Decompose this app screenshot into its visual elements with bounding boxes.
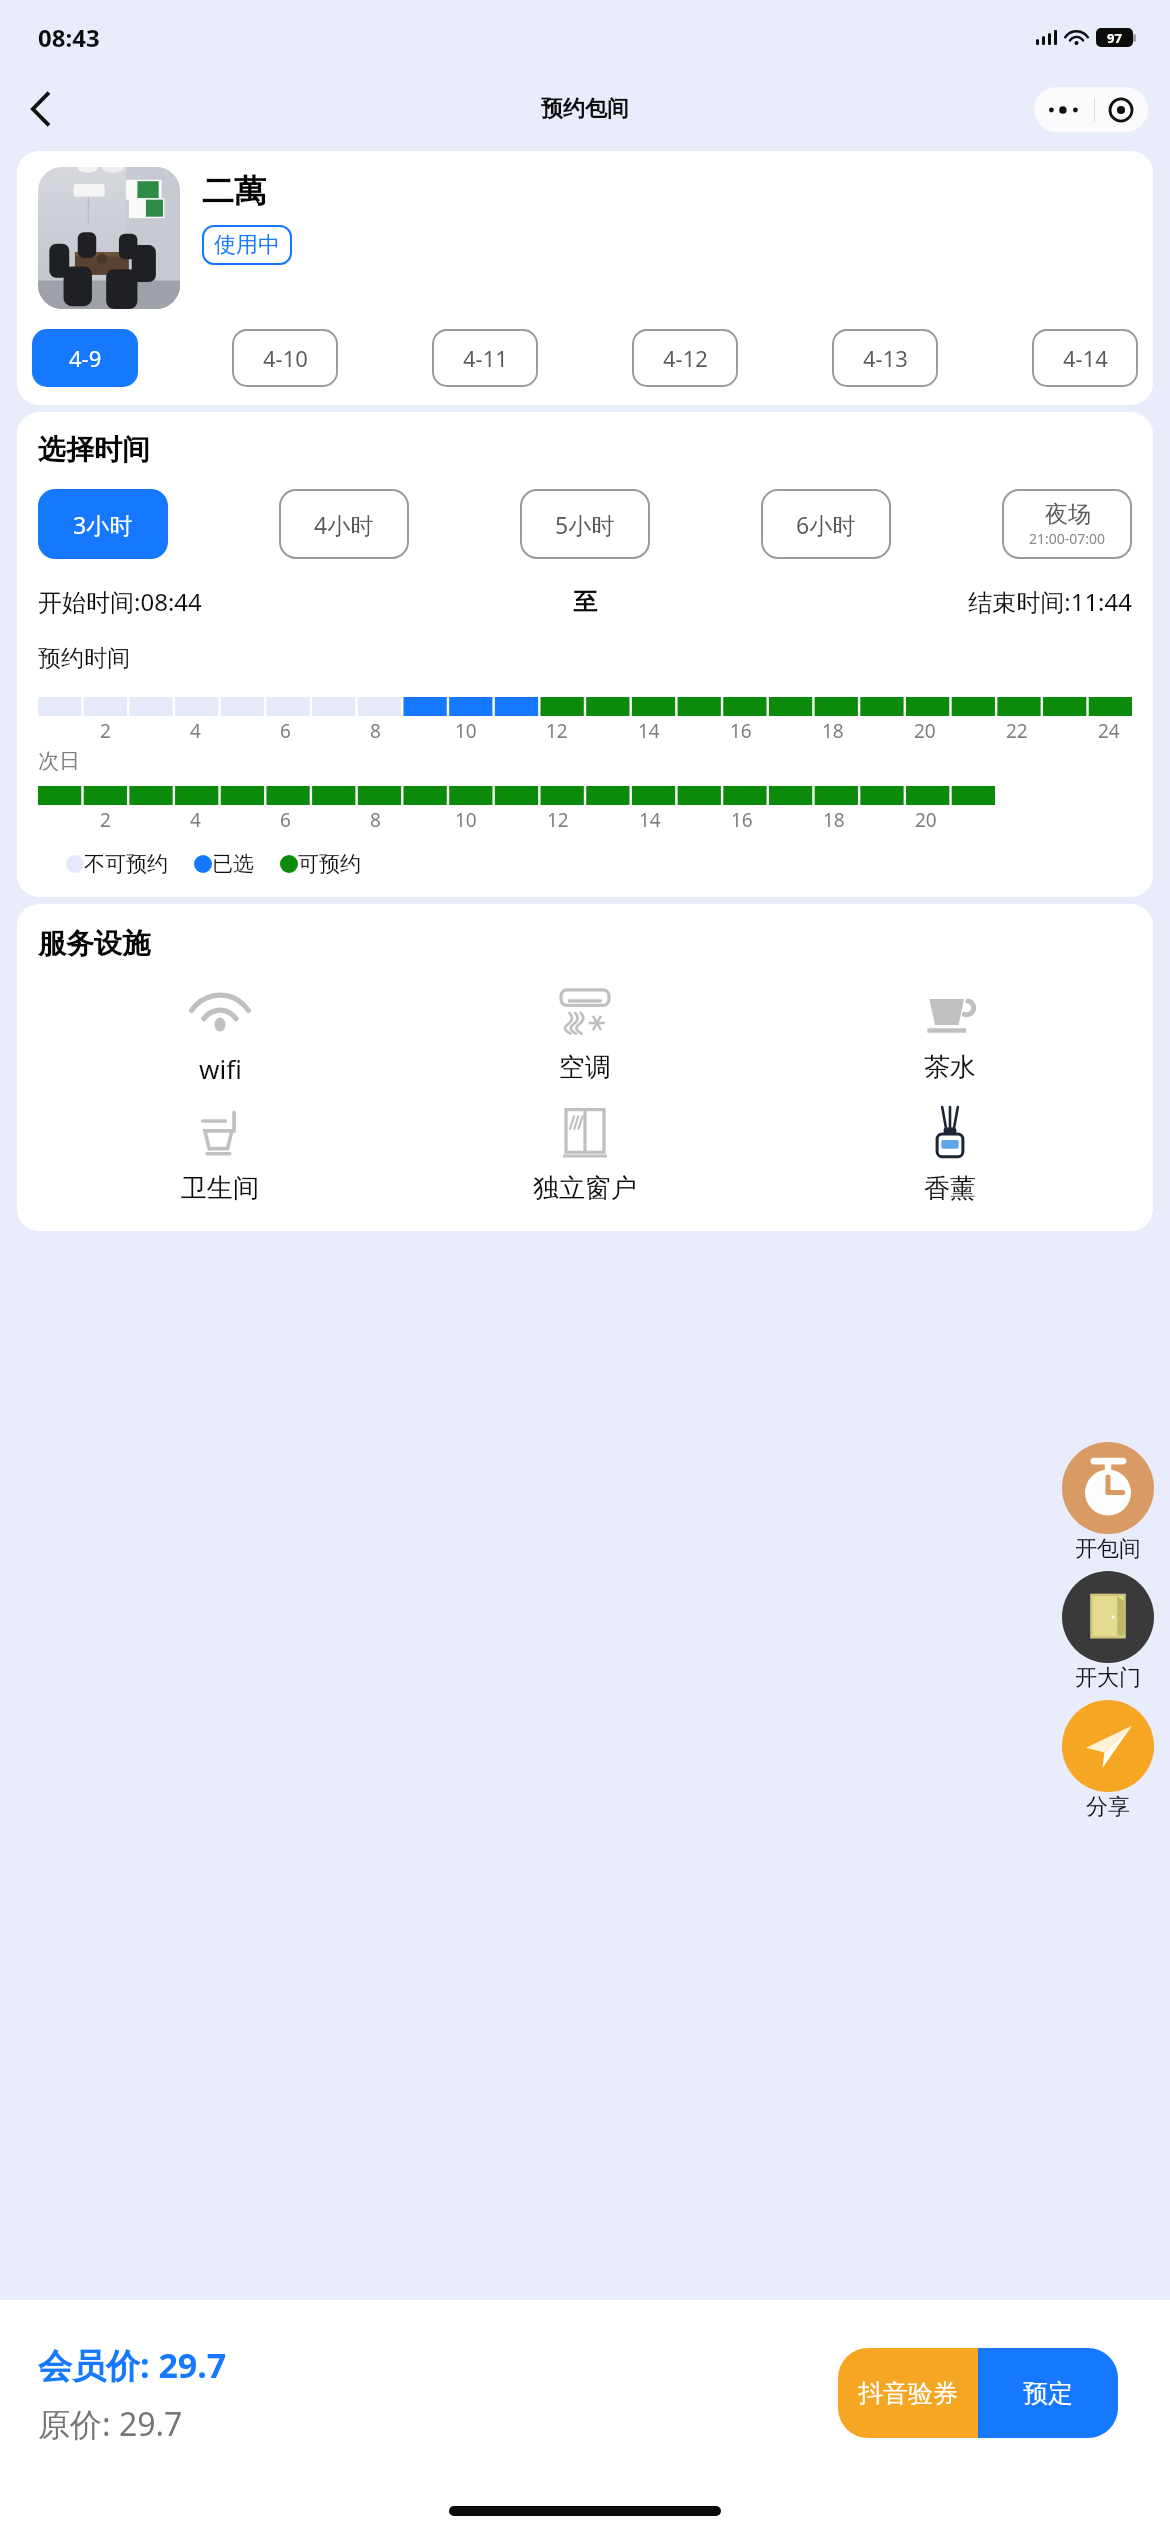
staticText: 4小时 [314,509,374,540]
staticText: 服务设施 [38,926,150,961]
button[interactable]: 4-10 [232,329,338,387]
staticText: 开包间 [1075,1535,1141,1563]
staticText: 18 [822,718,844,744]
staticText: 2 [100,718,111,744]
button[interactable]: 4-13 [832,329,938,387]
staticText: 5小时 [555,509,615,540]
staticText: 4-9 [69,343,102,373]
button[interactable]: wifi [38,985,402,1086]
button[interactable]: 4-12 [632,329,738,387]
staticText: 可预约 [298,851,361,877]
staticText: 24 [1098,718,1120,744]
staticText: 至 [573,587,597,617]
staticText: 21:00-07:00 [1029,529,1106,548]
staticText: 分享 [1086,1793,1130,1821]
staticText: 8 [370,718,381,744]
staticText: 茶水 [924,1051,976,1084]
staticText: 空调 [559,1051,611,1084]
staticText: 18 [823,807,845,833]
staticText: 4-14 [1063,343,1108,373]
button[interactable]: 3小时 [38,489,168,559]
staticText: 4-11 [463,343,508,373]
staticText: 开始时间:08:44 [38,585,573,618]
button[interactable]: 预定 [978,2348,1118,2438]
staticText: 4 [190,807,201,833]
staticText: 预定 [1023,2378,1073,2409]
button[interactable]: 4-14 [1032,329,1138,387]
staticText: 夜场 [1045,500,1091,529]
staticText: 4 [190,718,201,744]
staticText: 6小时 [796,509,856,540]
button[interactable]: 独立窗户 [402,1106,767,1205]
staticText: 预约时间 [38,644,130,673]
staticText: 抖音验券 [858,2378,958,2409]
staticText: 原价: 29.7 [38,2402,183,2446]
staticText: 次日 [38,748,80,774]
staticText: 12 [547,807,569,833]
staticText: 3小时 [73,509,133,540]
staticText: wifi [199,1051,242,1086]
staticText: 独立窗户 [533,1172,637,1205]
button[interactable]: 4-9 [32,329,138,387]
button[interactable]: 开包间 [1062,1442,1154,1563]
button[interactable]: 4-11 [432,329,538,387]
staticText: 20 [914,718,936,744]
staticText: 香薰 [924,1172,976,1205]
staticText: 12 [546,718,568,744]
button[interactable]: 夜场 [1002,489,1132,559]
staticText: 97 [1107,29,1122,47]
staticText: 16 [730,718,752,744]
staticText: 4-13 [863,343,908,373]
button[interactable]: 4小时 [279,489,409,559]
staticText: 14 [639,807,661,833]
button[interactable]: 5小时 [520,489,650,559]
staticText: 6 [280,718,291,744]
button[interactable]: 香薰 [767,1106,1132,1205]
button[interactable]: 抖音验券 [838,2348,978,2438]
staticText: 会员价: 29.7 [38,2342,227,2388]
staticText: 10 [455,807,477,833]
staticText: 开大门 [1075,1664,1141,1692]
button[interactable]: 使用中 [202,225,292,265]
staticText: 结束时间:11:44 [597,585,1132,618]
staticText: 22 [1006,718,1028,744]
button[interactable]: Mini program menu [1034,87,1148,132]
staticText: 卫生间 [181,1172,259,1205]
staticText: 10 [455,718,477,744]
button[interactable]: Back [16,85,64,133]
staticText: 已选 [212,851,254,877]
staticText: 不可预约 [84,851,168,877]
staticText: 8 [370,807,381,833]
staticText: 6 [280,807,291,833]
staticText: 4-12 [663,343,708,373]
staticText: 选择时间 [38,432,150,467]
button[interactable]: 分享 [1062,1700,1154,1821]
button[interactable]: 6小时 [761,489,891,559]
button[interactable]: 茶水 [767,985,1132,1084]
staticText: 使用中 [214,231,280,259]
staticText: 14 [638,718,660,744]
staticText: 二萬 [202,171,266,211]
staticText: 4-10 [263,343,308,373]
staticText: 预约包间 [541,95,629,123]
button[interactable]: 开大门 [1062,1571,1154,1692]
staticText: 20 [915,807,937,833]
button[interactable]: 卫生间 [38,1106,402,1205]
staticText: 2 [100,807,111,833]
staticText: 16 [731,807,753,833]
staticText: 08:43 [38,21,100,54]
button[interactable]: 空调 [402,985,767,1084]
